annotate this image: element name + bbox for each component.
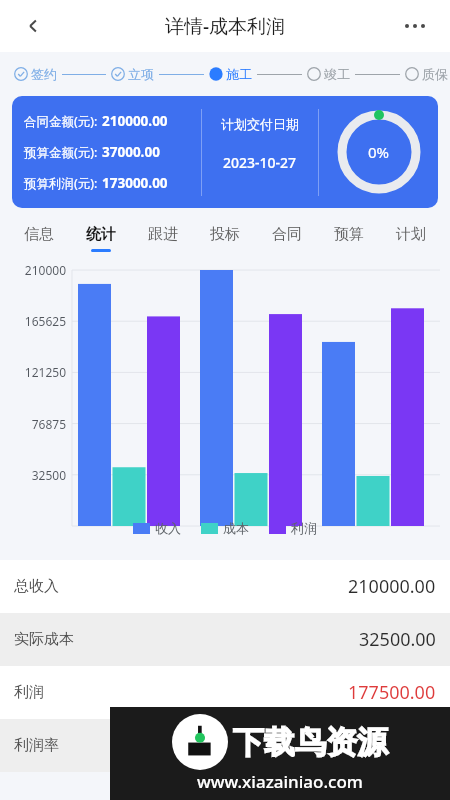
staticText: 统计 (86, 225, 116, 244)
button[interactable]: More options (394, 7, 436, 45)
button[interactable]: 合同金额(元): (12, 96, 438, 208)
button[interactable]: 计划 (380, 216, 442, 260)
staticText: 详情-成本利润 (165, 13, 286, 39)
staticText: 76875 (2, 416, 66, 432)
staticText: 利润率 (14, 736, 59, 755)
staticText: 546.15% (364, 733, 436, 758)
staticText: 质保 (422, 66, 448, 82)
staticText: 实际成本 (14, 630, 74, 649)
button[interactable]: 立项 (111, 66, 154, 82)
button[interactable]: Back (14, 7, 52, 45)
button[interactable]: 质保 (405, 66, 448, 82)
staticText: 竣工 (324, 66, 350, 82)
staticText: 签约 (31, 66, 57, 82)
staticText: 跟进 (148, 225, 178, 244)
button[interactable]: 合同 (256, 216, 318, 260)
staticText: 成本 (223, 520, 249, 536)
button[interactable]: 总收入 (0, 560, 450, 613)
staticText: 利润 (291, 520, 317, 536)
staticText: 210000.00 (348, 574, 436, 599)
button[interactable]: 利润率 (0, 719, 450, 772)
button[interactable]: 利润 (0, 666, 450, 719)
staticText: 210000 (2, 262, 66, 278)
staticText: 计划 (396, 225, 426, 244)
staticText: 收入 (155, 520, 181, 536)
button[interactable]: 竣工 (307, 66, 350, 82)
staticText: 2023-10-27 (223, 153, 297, 172)
staticText: 0% (368, 142, 390, 162)
staticText: 37000.00 (102, 143, 160, 161)
staticText: www.xiazainiao.com (197, 770, 363, 793)
staticText: 173000.00 (102, 174, 168, 192)
button[interactable]: 预算 (318, 216, 380, 260)
staticText: 预算利润(元): (24, 175, 98, 192)
staticText: 210000.00 (102, 112, 168, 130)
staticText: 177500.00 (348, 680, 436, 705)
staticText: 立项 (128, 66, 154, 82)
staticText: 合同 (272, 225, 302, 244)
staticText: 利润 (14, 683, 44, 702)
button[interactable]: 施工 (209, 66, 252, 82)
button[interactable]: 信息 (8, 216, 70, 260)
staticText: 信息 (24, 225, 54, 244)
staticText: 32500.00 (359, 627, 436, 652)
button[interactable]: 投标 (194, 216, 256, 260)
staticText: 投标 (210, 225, 240, 244)
button[interactable]: 签约 (14, 66, 57, 82)
staticText: 165625 (2, 313, 66, 329)
staticText: 总收入 (14, 577, 59, 596)
staticText: 121250 (2, 364, 66, 380)
button[interactable]: 统计 (70, 216, 132, 260)
button[interactable]: 实际成本 (0, 613, 450, 666)
staticText: 计划交付日期 (221, 116, 299, 132)
staticText: 预算金额(元): (24, 144, 98, 161)
staticText: 下载鸟资源 (233, 723, 388, 762)
button[interactable]: 跟进 (132, 216, 194, 260)
staticText: 合同金额(元): (24, 113, 98, 130)
staticText: 预算 (334, 225, 364, 244)
staticText: 施工 (226, 66, 252, 82)
staticText: 32500 (2, 467, 66, 483)
